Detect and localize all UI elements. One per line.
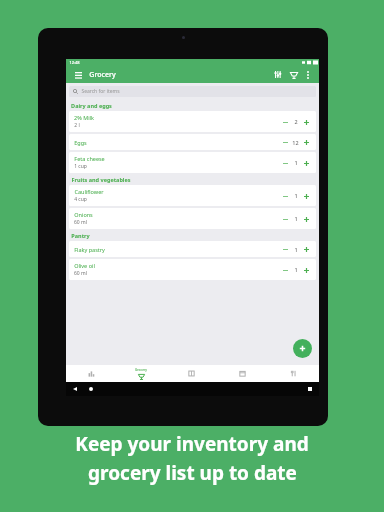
- staticText: Pantry: [71, 232, 90, 239]
- button[interactable]: Onions: [69, 208, 316, 229]
- staticText: Dairy and eggs: [71, 102, 112, 109]
- staticText: 1: [294, 266, 298, 273]
- staticText: grocery list up to date: [88, 460, 297, 486]
- button[interactable]: Cauliflower: [69, 185, 316, 206]
- staticText: 4 cup: [74, 196, 87, 203]
- button[interactable]: Decrease Onions: [280, 214, 290, 224]
- button[interactable]: 2% Milk: [69, 111, 316, 132]
- button[interactable]: Increase Cauliflower: [301, 191, 311, 201]
- button[interactable]: Shopping: [268, 365, 319, 382]
- button[interactable]: Eggs: [69, 134, 316, 150]
- staticText: Cauliflower: [74, 188, 104, 195]
- staticText: 2 l: [74, 122, 80, 129]
- staticText: Fruits and vegetables: [71, 176, 131, 183]
- staticText: Grocery: [89, 70, 116, 80]
- staticText: 1: [294, 192, 298, 199]
- button[interactable]: Shopping cart: [287, 68, 300, 81]
- staticText: 2: [294, 118, 298, 125]
- staticText: 60 ml: [74, 219, 87, 226]
- staticText: 1: [294, 215, 298, 222]
- button[interactable]: Inventory: [66, 365, 116, 382]
- button[interactable]: Decrease Olive oil: [280, 265, 290, 275]
- button[interactable]: Meal plan: [217, 365, 268, 382]
- button[interactable]: Increase Olive oil: [301, 265, 311, 275]
- button[interactable]: Decrease Feta cheese: [280, 158, 290, 168]
- button[interactable]: Search for items: [69, 86, 316, 97]
- staticText: 2% Milk: [74, 114, 94, 121]
- button[interactable]: Increase Flaky pastry: [301, 244, 311, 254]
- button[interactable]: Feta cheese: [69, 152, 316, 173]
- button[interactable]: Recipes: [166, 365, 217, 382]
- button[interactable]: Sort: [271, 68, 284, 81]
- staticText: 1: [294, 159, 298, 166]
- staticText: 12: [292, 139, 299, 146]
- button[interactable]: More options: [302, 69, 313, 80]
- button[interactable]: Decrease Cauliflower: [280, 191, 290, 201]
- staticText: Feta cheese: [74, 155, 105, 162]
- staticText: Onions: [74, 211, 93, 218]
- staticText: Olive oil: [74, 262, 95, 269]
- button[interactable]: Olive oil: [69, 259, 316, 280]
- button[interactable]: Grocery: [116, 365, 166, 382]
- staticText: 60 ml: [74, 270, 87, 277]
- staticText: Search for items: [81, 88, 120, 95]
- button[interactable]: Add item: [293, 339, 312, 358]
- staticText: 12:48: [69, 60, 80, 65]
- button[interactable]: Decrease Flaky pastry: [280, 244, 290, 254]
- button[interactable]: Increase Eggs: [301, 137, 311, 147]
- button[interactable]: Increase Feta cheese: [301, 158, 311, 168]
- staticText: Keep your inventory and: [75, 431, 309, 457]
- button[interactable]: Open navigation menu: [72, 69, 84, 81]
- button[interactable]: Flaky pastry: [69, 241, 316, 257]
- button[interactable]: Decrease Eggs: [280, 137, 290, 147]
- staticText: Flaky pastry: [74, 246, 105, 253]
- staticText: Grocery: [135, 368, 147, 372]
- staticText: 1: [294, 246, 298, 253]
- button[interactable]: Increase 2% Milk: [301, 117, 311, 127]
- staticText: 1 cup: [74, 163, 87, 170]
- button[interactable]: Increase Onions: [301, 214, 311, 224]
- button[interactable]: Decrease 2% Milk: [280, 117, 290, 127]
- staticText: Eggs: [74, 139, 87, 146]
